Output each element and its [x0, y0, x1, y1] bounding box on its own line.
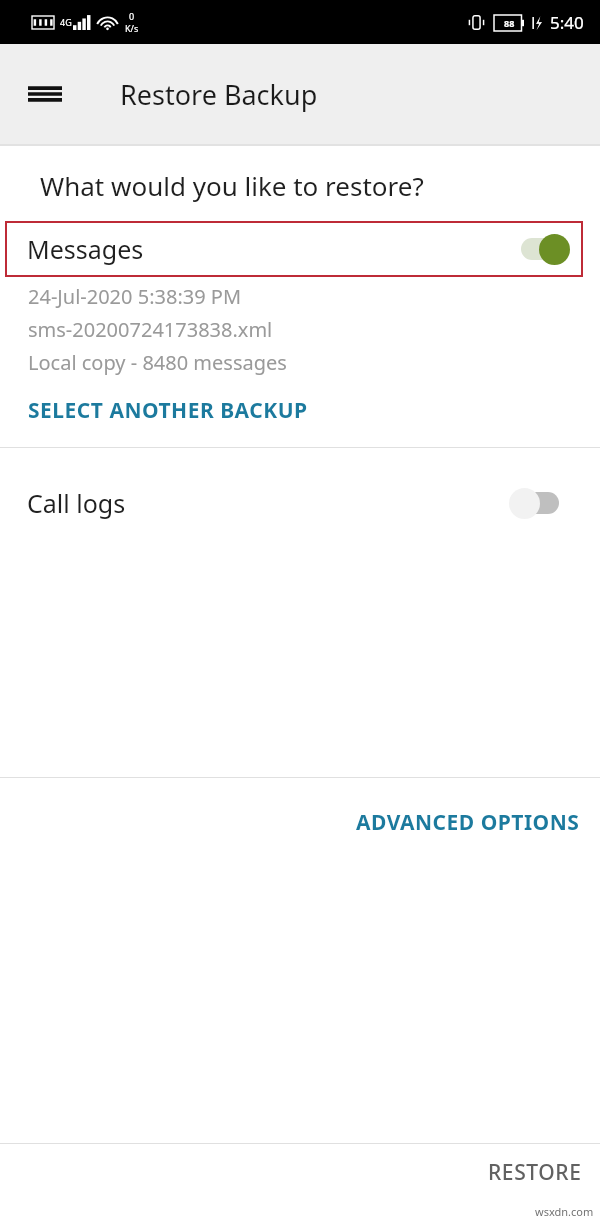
staticText: Call logs — [27, 486, 126, 520]
button[interactable]: Enabled — [515, 232, 571, 266]
staticText: 24-Jul-2020 5:38:39 PM — [28, 283, 242, 310]
staticText: wsxdn.com — [535, 1204, 594, 1219]
staticText: RESTORE — [488, 1158, 582, 1187]
staticText: K/s — [125, 22, 139, 34]
staticText: 4G — [60, 16, 72, 28]
button[interactable]: Messages — [5, 221, 583, 277]
staticText: SELECT ANOTHER BACKUP — [28, 396, 308, 425]
staticText: Restore Backup — [120, 76, 318, 113]
staticText: Local copy - 8480 messages — [28, 349, 287, 376]
button[interactable]: ADVANCED OPTIONS — [336, 800, 600, 845]
staticText: 0 — [129, 10, 135, 22]
staticText: 88 — [504, 17, 515, 29]
button[interactable]: SELECT ANOTHER BACKUP — [12, 390, 324, 431]
staticText: 5:40 — [550, 11, 584, 34]
staticText: What would you like to restore? — [40, 168, 424, 203]
button[interactable]: RESTORE — [470, 1150, 600, 1195]
staticText: ADVANCED OPTIONS — [356, 808, 580, 837]
staticText: Messages — [27, 232, 144, 266]
button[interactable]: Open navigation menu — [14, 68, 76, 120]
button[interactable]: Call logs — [0, 448, 600, 558]
button[interactable]: Disabled — [509, 486, 565, 520]
staticText: sms-20200724173838.xml — [28, 316, 273, 343]
